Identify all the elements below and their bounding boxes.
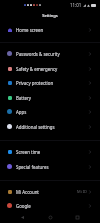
staticText: Mi ID (77, 189, 87, 194)
button[interactable]: Home (45, 212, 56, 223)
button[interactable]: Passwords & security (0, 46, 100, 61)
button[interactable]: Safety & emergency (0, 61, 100, 76)
button[interactable]: Home screen (0, 22, 100, 37)
staticText: 11:01 (70, 2, 82, 8)
staticText: Mi Account (16, 189, 39, 195)
button[interactable]: Recents (72, 212, 83, 223)
button[interactable]: Additional settings (0, 119, 100, 134)
staticText: Passwords & security (16, 51, 60, 57)
button[interactable]: Google (0, 198, 100, 213)
button[interactable]: Privacy protection (0, 75, 100, 90)
staticText: Settings (42, 13, 58, 18)
button[interactable]: Screen time (0, 144, 100, 159)
staticText: Apps (16, 109, 27, 115)
button[interactable]: Apps (0, 104, 100, 119)
staticText: Additional settings (16, 124, 55, 130)
staticText: Safety & emergency (16, 66, 58, 72)
staticText: Home screen (16, 27, 44, 33)
staticText: Screen time (16, 149, 41, 155)
staticText: Special features (16, 164, 49, 170)
staticText: Google (16, 203, 31, 209)
button[interactable]: Special features (0, 159, 100, 174)
button[interactable]: Mi Account (0, 184, 100, 199)
button[interactable]: Battery (0, 90, 100, 105)
button[interactable]: Back (17, 212, 28, 223)
staticText: Battery (16, 95, 32, 101)
staticText: Privacy protection (16, 80, 54, 86)
